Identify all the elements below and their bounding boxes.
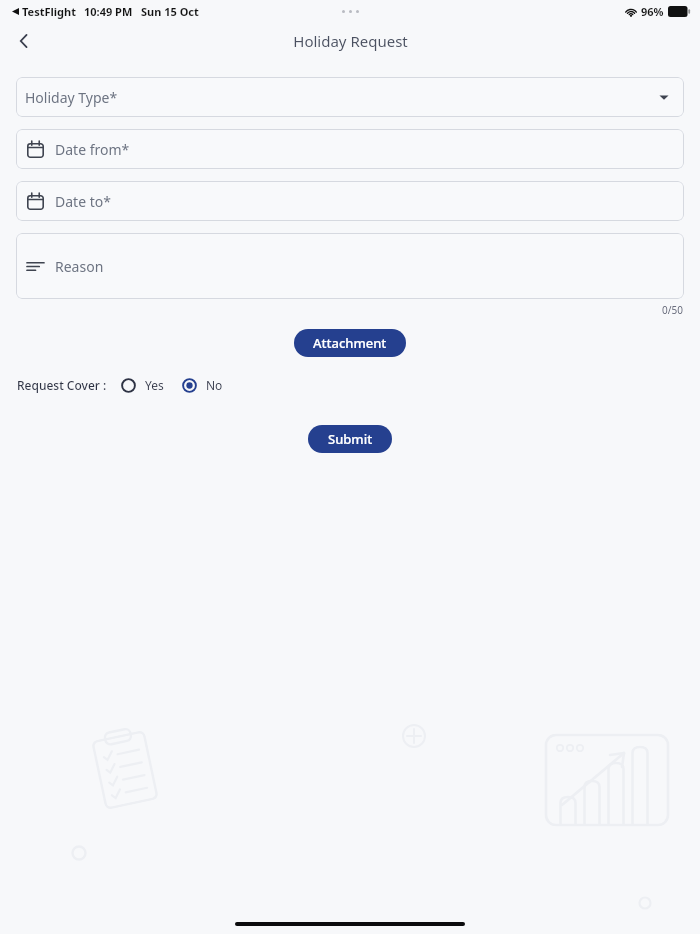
staticText: Holiday Type* xyxy=(25,88,118,107)
button[interactable]: Yes xyxy=(119,373,166,397)
button[interactable]: Attachment xyxy=(294,329,406,357)
button[interactable]: Reason xyxy=(16,233,684,299)
staticText: Yes xyxy=(145,377,164,393)
button[interactable]: Submit xyxy=(308,425,392,453)
button[interactable]: Back xyxy=(8,25,40,57)
staticText: No xyxy=(206,377,223,393)
button[interactable]: Holiday Type* xyxy=(16,77,684,117)
staticText: 0/50 xyxy=(662,303,683,317)
staticText: Date to* xyxy=(55,192,111,211)
staticText: Submit xyxy=(328,430,373,448)
staticText: Date from* xyxy=(55,140,130,159)
staticText: 96% xyxy=(641,4,664,19)
staticText: Reason xyxy=(55,257,104,276)
button[interactable]: Date to* xyxy=(16,181,684,221)
staticText: Holiday Request xyxy=(293,31,408,51)
staticText: Sun 15 Oct xyxy=(141,4,199,19)
button[interactable]: No xyxy=(180,373,225,397)
staticText: 10:49 PM xyxy=(84,4,133,19)
staticText: TestFlight xyxy=(22,4,76,19)
staticText: Request Cover : xyxy=(17,377,107,393)
staticText: Attachment xyxy=(313,334,387,352)
button[interactable]: Date from* xyxy=(16,129,684,169)
